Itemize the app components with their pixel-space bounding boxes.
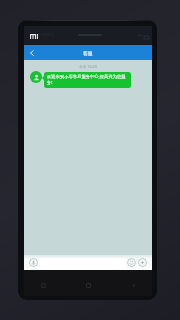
staticText: 今天 16:23 bbox=[24, 64, 152, 69]
staticText: 欢迎来到小店售后服务中心,很高兴为您服务! bbox=[47, 73, 129, 86]
button[interactable]: Voice message bbox=[29, 258, 38, 267]
button[interactable]: Contact avatar bbox=[30, 71, 42, 83]
button[interactable]: Back bbox=[25, 46, 38, 59]
button[interactable]: Home bbox=[75, 279, 101, 291]
button[interactable]: More options bbox=[138, 258, 147, 267]
staticText: 中国移动 bbox=[38, 32, 54, 37]
button[interactable]: 欢迎来到小店售后服务中心,很高兴为您服务! bbox=[44, 72, 131, 88]
button[interactable]: Emoji bbox=[127, 258, 136, 267]
button[interactable]: Recent apps bbox=[30, 279, 56, 291]
other: MI bbox=[30, 34, 38, 39]
staticText: 客服 bbox=[83, 50, 93, 56]
